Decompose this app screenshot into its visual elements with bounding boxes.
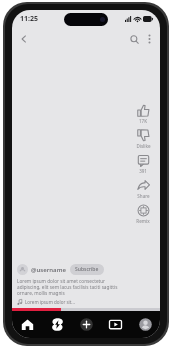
button[interactable]: Subscriptions bbox=[101, 311, 129, 338]
staticText: Lorem ipsum dolor sit amet consectetur a… bbox=[17, 278, 126, 296]
staticText: @username bbox=[31, 266, 66, 274]
button[interactable]: Share bbox=[130, 179, 156, 199]
button[interactable]: Comments bbox=[130, 154, 156, 174]
staticText: Remix bbox=[136, 218, 150, 224]
staticText: 17K bbox=[139, 118, 147, 124]
staticText: Dislike bbox=[136, 143, 151, 149]
staticText: Lorem ipsum dolor sit... bbox=[25, 299, 75, 305]
staticText: 11:25 bbox=[20, 14, 38, 24]
button[interactable]: Create bbox=[72, 311, 100, 338]
button[interactable]: Dislike bbox=[130, 129, 156, 149]
button[interactable]: Profile bbox=[131, 311, 159, 338]
button[interactable]: Search bbox=[126, 31, 142, 47]
staticText: 391 bbox=[139, 168, 147, 174]
button[interactable]: Home bbox=[13, 311, 41, 338]
staticText: Subscribe bbox=[75, 266, 99, 273]
button[interactable]: More options bbox=[142, 32, 156, 46]
staticText: Share bbox=[137, 193, 150, 199]
button[interactable]: Like bbox=[130, 104, 156, 124]
button[interactable]: Shorts bbox=[43, 311, 71, 338]
button[interactable]: Back bbox=[16, 31, 32, 47]
button[interactable]: Subscribe bbox=[70, 264, 104, 275]
button[interactable]: Remix bbox=[130, 204, 156, 224]
